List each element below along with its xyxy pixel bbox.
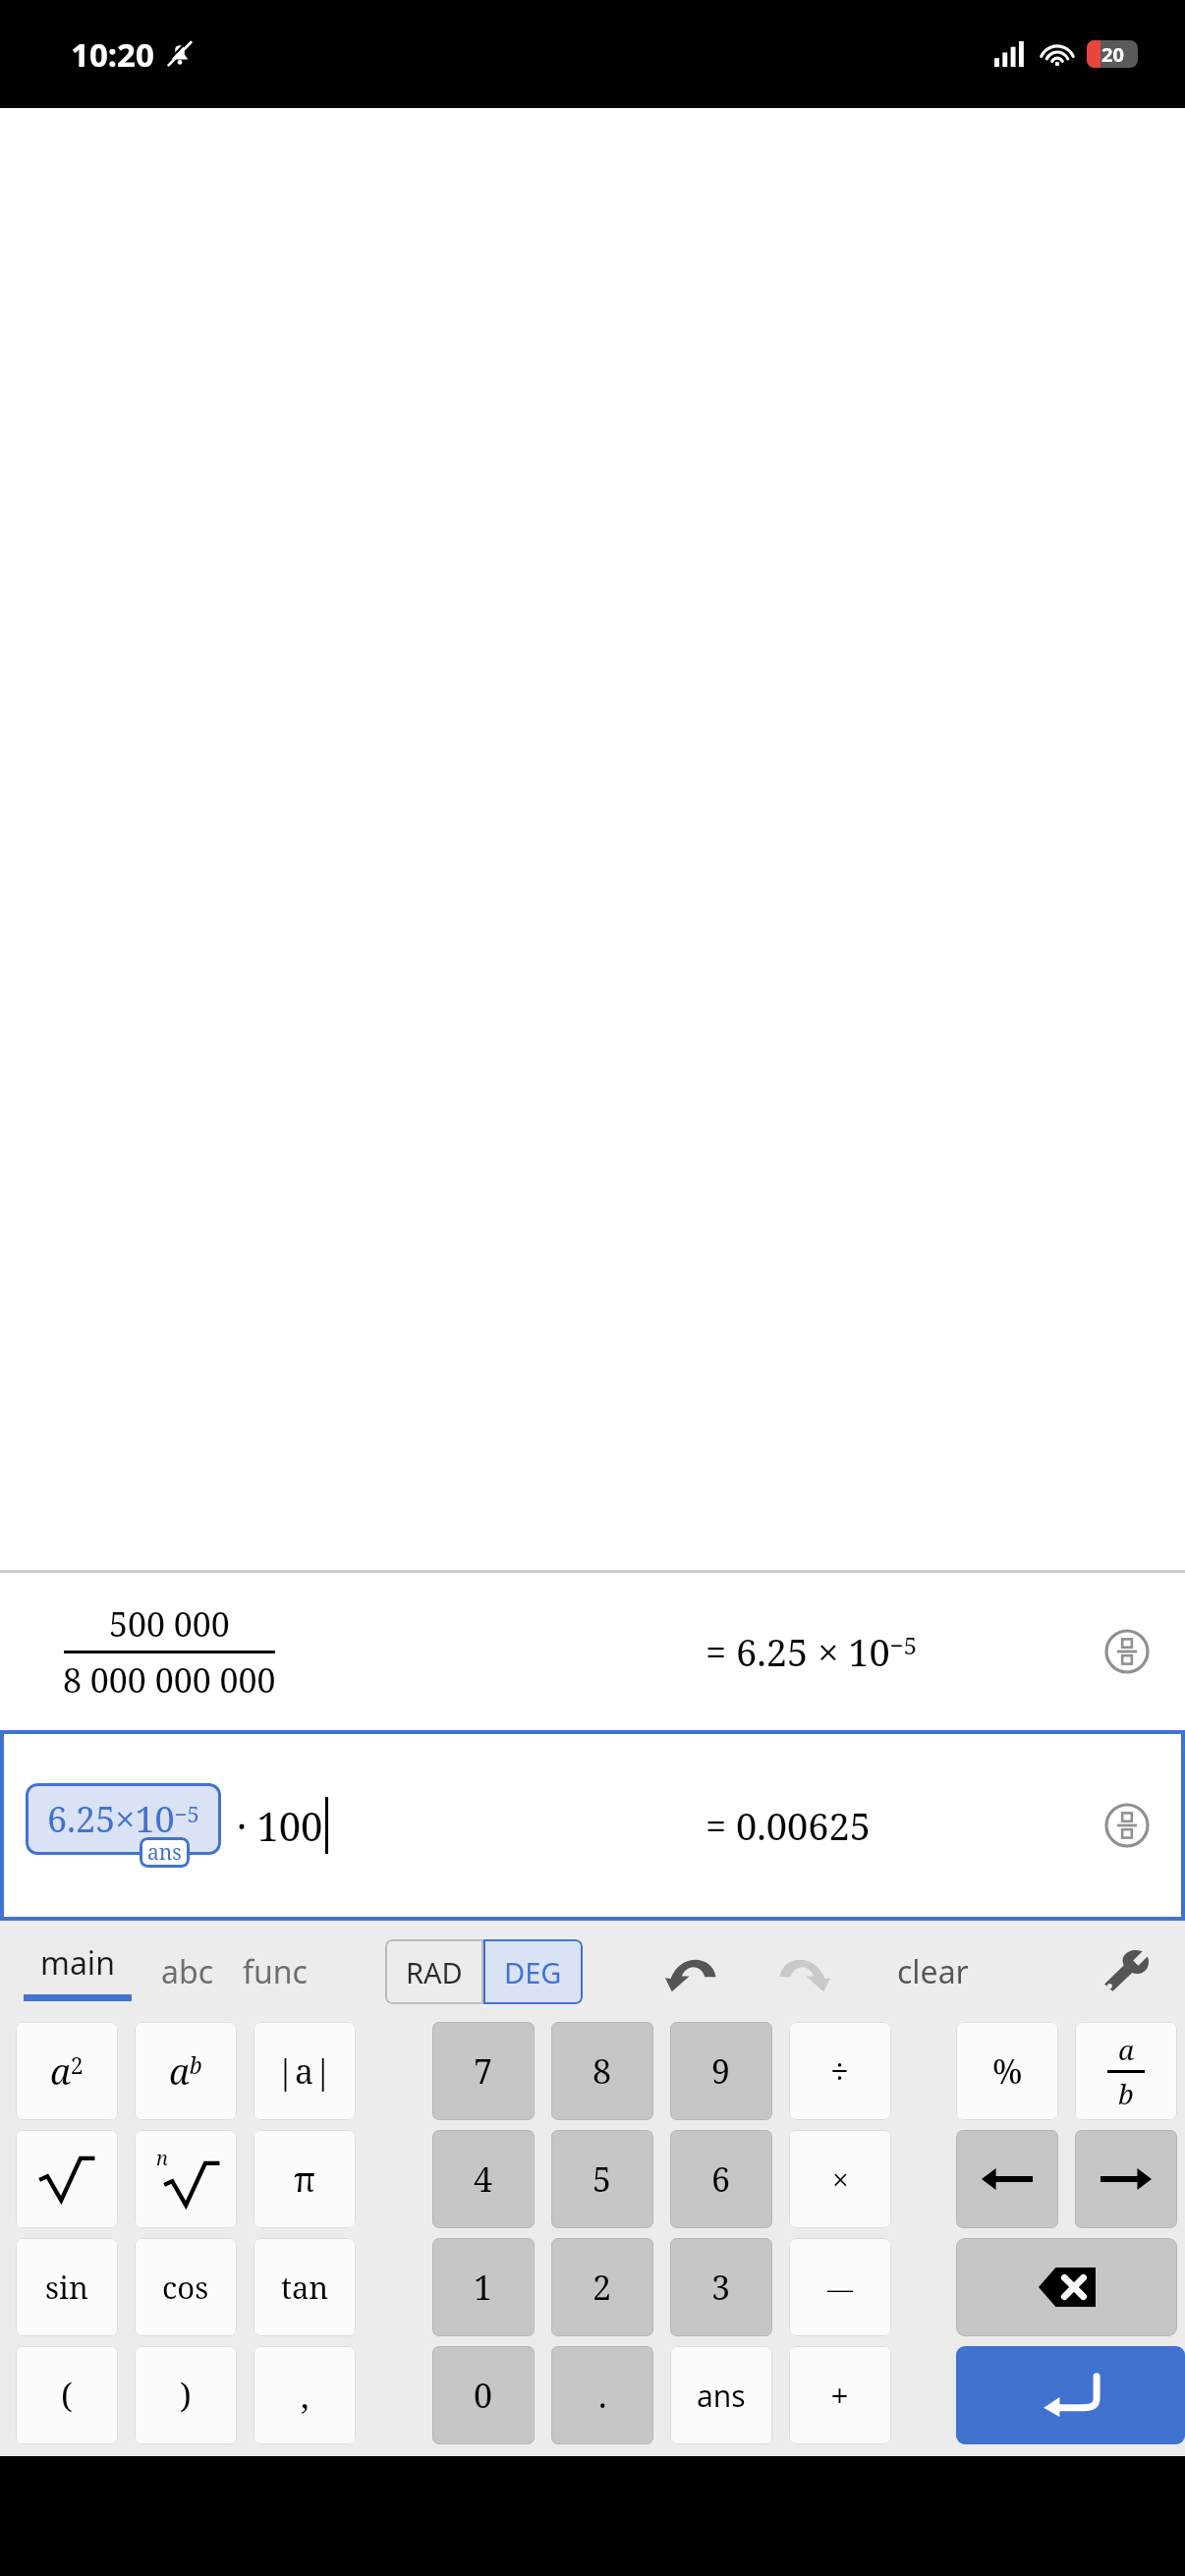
button[interactable]: 8	[551, 2022, 653, 2120]
staticText: 8	[592, 2048, 612, 2094]
button[interactable]: Square root	[16, 2130, 118, 2228]
button[interactable]: 9	[670, 2022, 772, 2120]
button[interactable]: —	[789, 2238, 891, 2336]
staticText: %	[992, 2048, 1023, 2094]
button[interactable]: 1	[432, 2238, 535, 2336]
staticText: —	[827, 2270, 854, 2305]
staticText: 6.25×10−5	[47, 1795, 199, 1843]
staticText: 2	[592, 2265, 612, 2310]
staticText: π	[294, 2156, 316, 2202]
staticText: 0	[474, 2373, 493, 2418]
button[interactable]: tan	[254, 2238, 356, 2336]
button[interactable]: 5	[551, 2130, 653, 2228]
button[interactable]: Move cursor right	[1075, 2130, 1177, 2228]
button[interactable]: main	[18, 1941, 138, 2001]
button[interactable]: Enter	[956, 2346, 1185, 2444]
staticText: DEG	[504, 1953, 562, 1991]
button[interactable]: Fraction	[1075, 2022, 1177, 2120]
staticText: 6	[711, 2156, 731, 2202]
button[interactable]: π	[254, 2130, 356, 2228]
staticText: 500 000	[109, 1601, 230, 1647]
staticText: a	[1118, 2031, 1135, 2068]
button[interactable]: Toggle fraction display	[1104, 1629, 1150, 1674]
button[interactable]: sin	[16, 2238, 118, 2336]
button[interactable]: ÷	[789, 2022, 891, 2120]
button[interactable]: DEG	[483, 1939, 583, 2004]
button[interactable]: Move cursor left	[956, 2130, 1058, 2228]
staticText: 1	[474, 2265, 493, 2310]
staticText: )	[180, 2373, 192, 2418]
staticText: 3	[711, 2265, 731, 2310]
button[interactable]: Toggle fraction display	[1104, 1803, 1150, 1848]
staticText: ans	[697, 2376, 746, 2416]
button[interactable]: ab	[135, 2022, 237, 2120]
button[interactable]: 0	[432, 2346, 535, 2444]
staticText: ans	[147, 1838, 182, 1867]
staticText: RAD	[406, 1953, 463, 1991]
staticText: func	[243, 1950, 308, 1993]
button[interactable]: 500 000	[0, 1573, 1185, 1730]
staticText: cos	[162, 2267, 209, 2308]
button[interactable]: 6.25×10−5	[0, 1730, 1185, 1921]
button[interactable]: )	[135, 2346, 237, 2444]
button[interactable]: cos	[135, 2238, 237, 2336]
staticText: ab	[169, 2047, 202, 2096]
staticText: · 100	[237, 1799, 323, 1852]
staticText: .	[598, 2373, 607, 2418]
button[interactable]: func	[237, 1942, 313, 2001]
staticText: main	[40, 1941, 115, 1985]
staticText: 9	[711, 2048, 731, 2094]
button[interactable]: ,	[254, 2346, 356, 2444]
staticText: = 6.25 × 10−5	[705, 1626, 918, 1677]
button[interactable]: ans	[670, 2346, 772, 2444]
staticText: b	[1118, 2075, 1134, 2112]
button[interactable]: (	[16, 2346, 118, 2444]
button[interactable]: a2	[16, 2022, 118, 2120]
staticText: +	[830, 2373, 850, 2418]
staticText: |a|	[276, 2048, 333, 2094]
staticText: 5	[592, 2156, 612, 2202]
button[interactable]: ×	[789, 2130, 891, 2228]
button[interactable]: Settings	[1093, 1937, 1161, 2006]
button[interactable]: %	[956, 2022, 1058, 2120]
staticText: ÷	[830, 2048, 850, 2094]
button[interactable]: clear	[889, 1942, 977, 2001]
staticText: sin	[45, 2267, 88, 2308]
button[interactable]: Backspace	[956, 2238, 1177, 2336]
staticText: 10:20	[71, 32, 154, 77]
button[interactable]: 7	[432, 2022, 535, 2120]
staticText: abc	[161, 1950, 213, 1993]
button[interactable]: nth root	[135, 2130, 237, 2228]
button[interactable]: abc	[155, 1942, 219, 2001]
button[interactable]: |a|	[254, 2022, 356, 2120]
staticText: 20	[1101, 41, 1124, 68]
staticText: 7	[474, 2048, 493, 2094]
staticText: clear	[897, 1950, 969, 1993]
staticText: 4	[474, 2156, 493, 2202]
staticText: 8 000 000 000	[63, 1657, 276, 1703]
button[interactable]: 4	[432, 2130, 535, 2228]
staticText: tan	[281, 2267, 329, 2308]
button[interactable]: RAD	[385, 1939, 483, 2004]
staticText: ,	[301, 2373, 310, 2418]
button[interactable]: 3	[670, 2238, 772, 2336]
staticText: = 0.00625	[705, 1800, 872, 1851]
staticText: (	[61, 2373, 73, 2418]
button[interactable]: Undo	[653, 1932, 732, 2011]
button[interactable]: Redo	[763, 1932, 842, 2011]
staticText: ×	[832, 2159, 849, 2200]
button[interactable]: .	[551, 2346, 653, 2444]
button[interactable]: 6	[670, 2130, 772, 2228]
staticText: a2	[50, 2047, 84, 2096]
button[interactable]: 2	[551, 2238, 653, 2336]
button[interactable]: +	[789, 2346, 891, 2444]
staticText: n	[156, 2145, 168, 2171]
